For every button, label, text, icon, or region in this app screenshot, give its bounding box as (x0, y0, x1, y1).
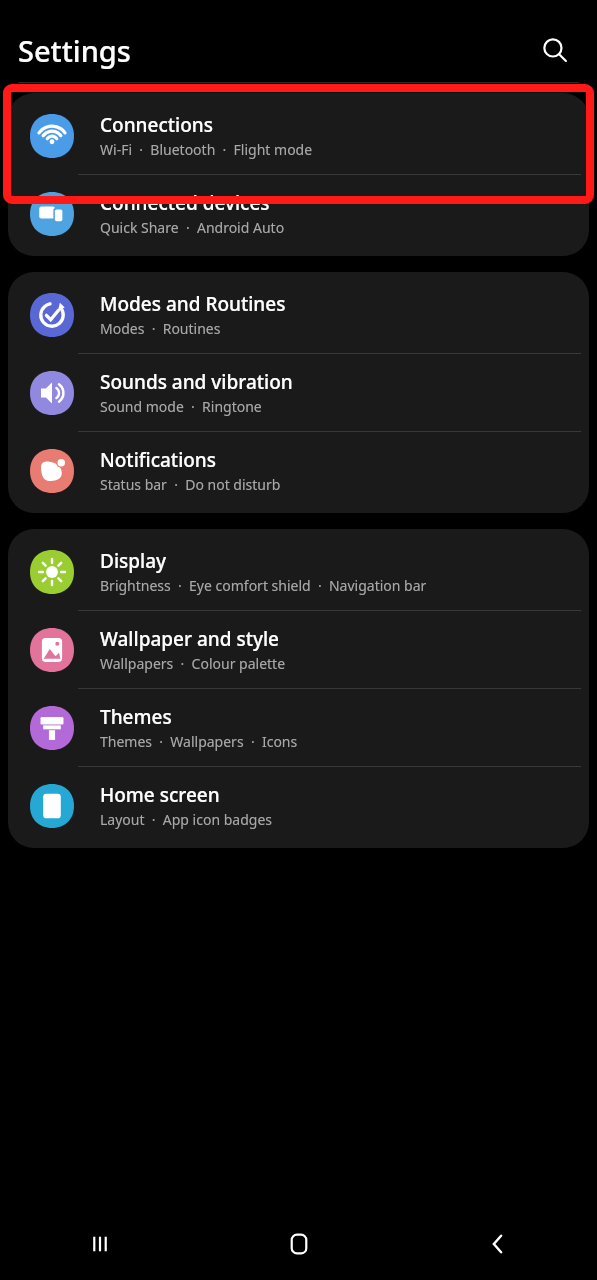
button[interactable]: Search (531, 26, 579, 74)
staticText: Modes and Routines (100, 291, 286, 317)
staticText: Layout · App icon badges (100, 810, 273, 829)
staticText: Sound mode · Ringtone (100, 397, 262, 416)
staticText: Brightness · Eye comfort shield · Naviga… (100, 576, 427, 595)
button[interactable]: Display (8, 533, 589, 610)
button[interactable]: Back (398, 1208, 597, 1280)
button[interactable]: Notifications (8, 432, 589, 509)
staticText: Quick Share · Android Auto (100, 218, 285, 237)
staticText: Themes (100, 704, 172, 730)
staticText: Status bar · Do not disturb (100, 475, 281, 494)
staticText: Wallpaper and style (100, 626, 280, 652)
staticText: Wi-Fi · Bluetooth · Flight mode (100, 140, 313, 159)
staticText: Settings (18, 31, 131, 70)
button[interactable]: Themes (8, 689, 589, 766)
staticText: Modes · Routines (100, 319, 221, 338)
staticText: Home screen (100, 782, 220, 808)
button[interactable]: Home (199, 1208, 398, 1280)
button[interactable]: Home screen (8, 767, 589, 844)
button[interactable]: Wallpaper and style (8, 611, 589, 688)
staticText: Connections (100, 112, 213, 138)
button[interactable]: Recent apps (0, 1208, 199, 1280)
button[interactable]: Sounds and vibration (8, 354, 589, 431)
staticText: Connected devices (100, 190, 270, 216)
button[interactable]: Connected devices (8, 175, 589, 252)
staticText: Wallpapers · Colour palette (100, 654, 286, 673)
staticText: Display (100, 548, 167, 574)
button[interactable]: Modes and Routines (8, 276, 589, 353)
staticText: Themes · Wallpapers · Icons (100, 732, 298, 751)
button[interactable]: Connections (8, 97, 589, 174)
staticText: Notifications (100, 447, 217, 473)
staticText: Sounds and vibration (100, 369, 293, 395)
